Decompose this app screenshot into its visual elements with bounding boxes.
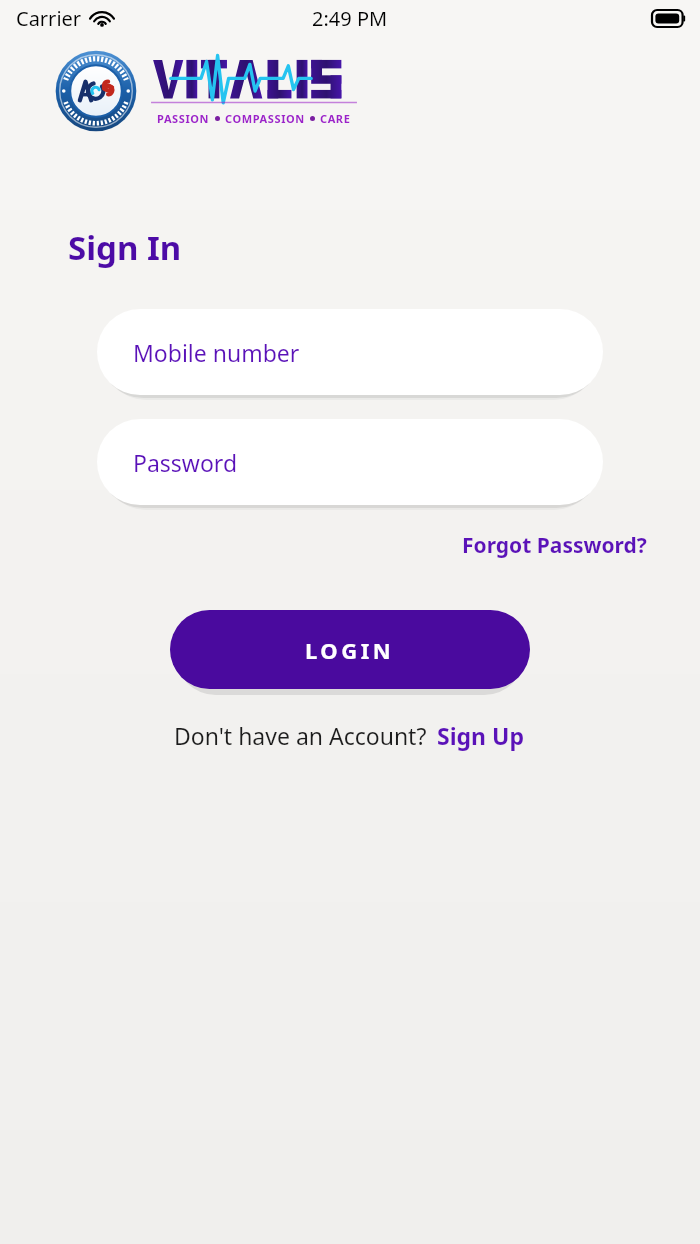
staticText: PASSION [157,111,210,126]
button[interactable]: Mobile number [97,309,603,395]
staticText: Sign In [68,225,182,270]
staticText: Carrier [16,5,82,32]
staticText: Sign Up [437,720,524,751]
staticText: COMPASSION [225,111,305,126]
staticText: Don't have an Account? [174,720,427,751]
button[interactable]: Password [97,419,603,505]
button[interactable]: Sign Up [435,717,526,754]
staticText: 2:49 PM [312,5,388,32]
staticText: Password [133,447,238,478]
staticText: Forgot Password? [462,531,647,560]
button[interactable]: LOGIN [170,610,530,689]
staticText: Mobile number [133,337,300,368]
button[interactable]: Forgot Password? [460,527,649,564]
staticText: LOGIN [305,635,395,665]
staticText: CARE [320,111,351,126]
